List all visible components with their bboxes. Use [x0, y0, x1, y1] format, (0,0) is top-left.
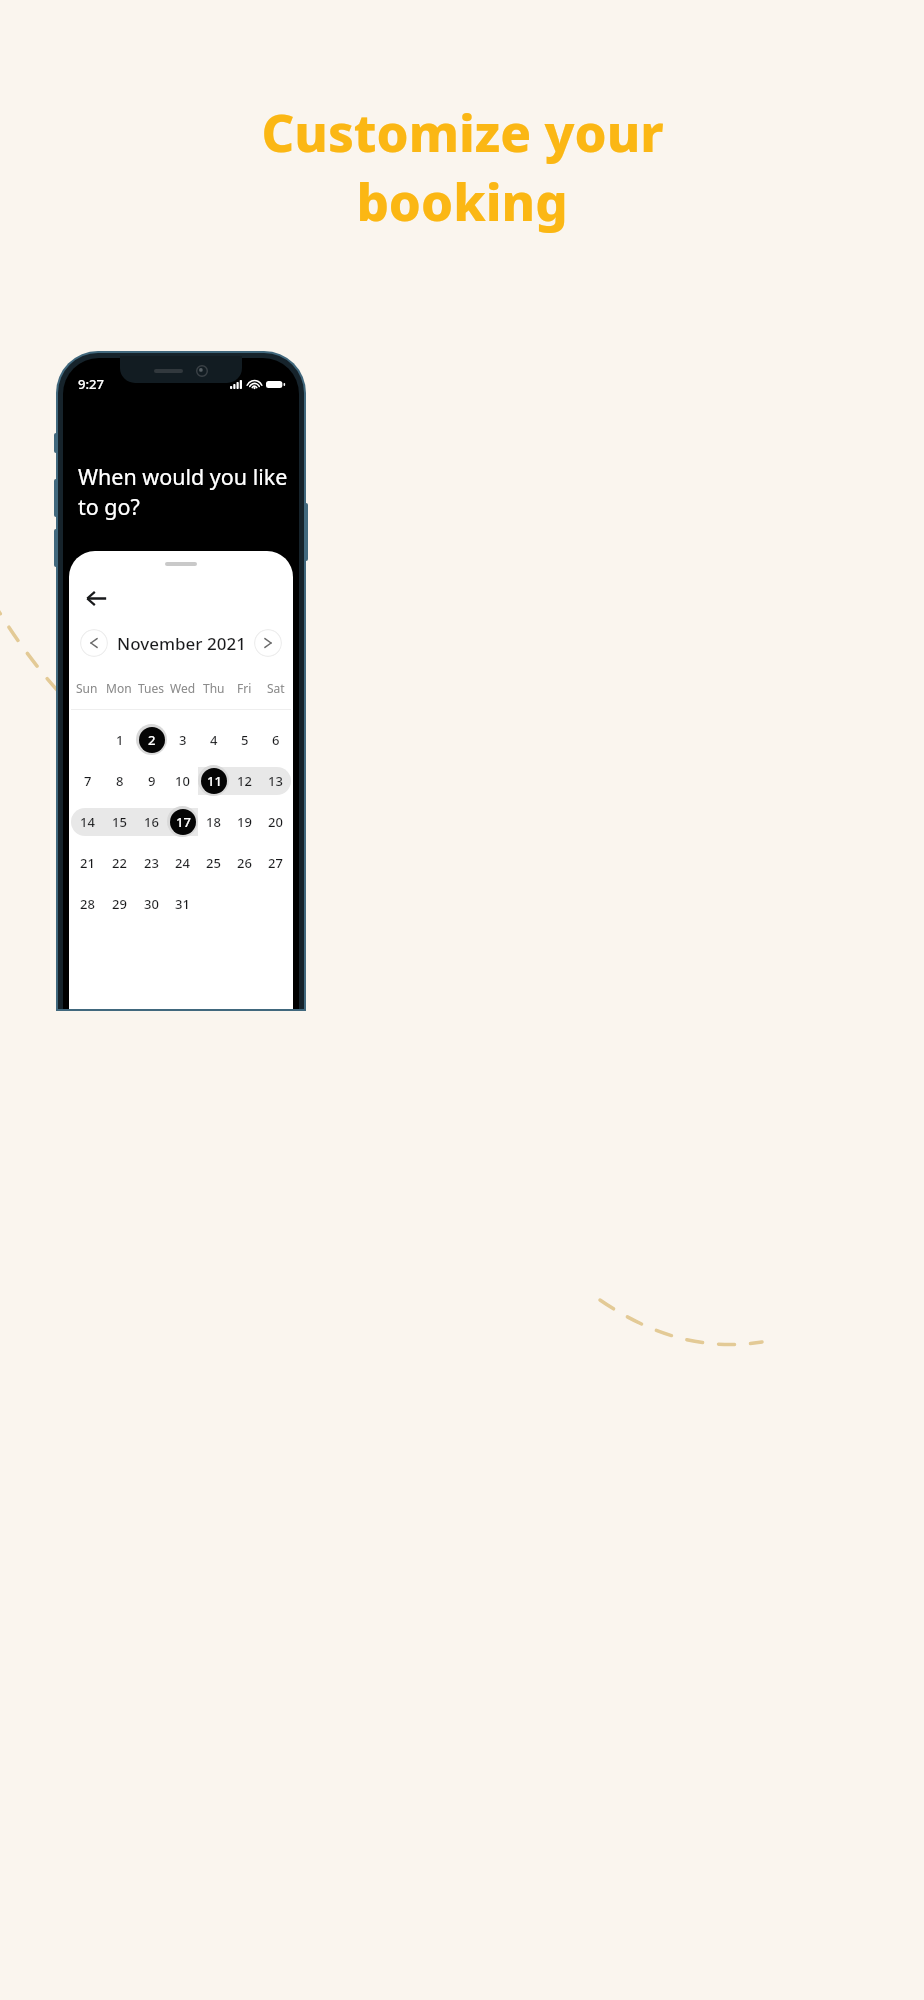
- staticText: 4: [210, 731, 218, 749]
- button[interactable]: 27: [260, 847, 291, 878]
- staticText: 8: [116, 772, 124, 790]
- staticText: 29: [112, 895, 127, 913]
- button[interactable]: 26: [229, 847, 260, 878]
- button[interactable]: 9: [136, 765, 167, 796]
- button[interactable]: 18: [198, 806, 229, 837]
- button[interactable]: 11: [198, 765, 229, 796]
- button[interactable]: 7: [72, 765, 103, 796]
- button[interactable]: 1: [104, 724, 135, 755]
- button[interactable]: 25: [198, 847, 229, 878]
- staticText: 28: [80, 895, 95, 913]
- button[interactable]: 17: [167, 806, 198, 837]
- staticText: Customize your: [261, 97, 664, 166]
- staticText: Mon: [106, 680, 132, 696]
- button[interactable]: 20: [260, 806, 291, 837]
- button[interactable]: 21: [72, 847, 103, 878]
- button[interactable]: 16: [136, 806, 167, 837]
- staticText: 23: [144, 854, 159, 872]
- staticText: 16: [144, 813, 159, 831]
- staticText: 22: [112, 854, 127, 872]
- staticText: Tues: [138, 680, 165, 696]
- staticText: 31: [175, 895, 190, 913]
- staticText: 9: [148, 772, 156, 790]
- button[interactable]: 4: [198, 724, 229, 755]
- staticText: 21: [80, 854, 95, 872]
- button[interactable]: 24: [167, 847, 198, 878]
- staticText: 25: [206, 854, 221, 872]
- button[interactable]: 13: [260, 765, 291, 796]
- staticText: Fri: [237, 680, 252, 696]
- staticText: 14: [80, 813, 95, 831]
- button[interactable]: 10: [167, 765, 198, 796]
- button[interactable]: Next month: [254, 629, 282, 657]
- button[interactable]: 15: [104, 806, 135, 837]
- staticText: 12: [237, 772, 252, 790]
- button[interactable]: 3: [167, 724, 198, 755]
- staticText: Sun: [76, 680, 98, 696]
- staticText: 19: [237, 813, 252, 831]
- staticText: 15: [112, 813, 127, 831]
- staticText: 27: [268, 854, 283, 872]
- staticText: When would you like to go?: [78, 462, 288, 521]
- staticText: Sat: [267, 680, 285, 696]
- button[interactable]: 5: [229, 724, 260, 755]
- staticText: 9:27: [78, 375, 104, 393]
- staticText: Wed: [170, 680, 196, 696]
- staticText: 30: [144, 895, 159, 913]
- staticText: 17: [176, 813, 191, 831]
- staticText: booking: [356, 166, 568, 235]
- button[interactable]: 19: [229, 806, 260, 837]
- button[interactable]: 14: [72, 806, 103, 837]
- staticText: 3: [179, 731, 187, 749]
- staticText: 11: [207, 772, 222, 790]
- button[interactable]: 23: [136, 847, 167, 878]
- button[interactable]: 22: [104, 847, 135, 878]
- button[interactable]: 28: [72, 888, 103, 919]
- staticText: 1: [116, 731, 124, 749]
- button[interactable]: 8: [104, 765, 135, 796]
- button[interactable]: 30: [136, 888, 167, 919]
- staticText: 26: [237, 854, 252, 872]
- staticText: 18: [206, 813, 221, 831]
- staticText: 20: [268, 813, 283, 831]
- staticText: November 2021: [117, 632, 246, 655]
- button[interactable]: 12: [229, 765, 260, 796]
- staticText: 10: [175, 772, 190, 790]
- button[interactable]: Back: [78, 580, 114, 616]
- button[interactable]: 31: [167, 888, 198, 919]
- staticText: Thu: [203, 680, 225, 696]
- staticText: 7: [84, 772, 92, 790]
- staticText: 5: [241, 731, 249, 749]
- staticText: 13: [268, 772, 283, 790]
- button[interactable]: 29: [104, 888, 135, 919]
- staticText: 6: [272, 731, 280, 749]
- button[interactable]: 2: [136, 724, 167, 755]
- staticText: 2: [148, 731, 156, 749]
- staticText: 24: [175, 854, 190, 872]
- button[interactable]: Previous month: [80, 629, 108, 657]
- button[interactable]: 6: [260, 724, 291, 755]
